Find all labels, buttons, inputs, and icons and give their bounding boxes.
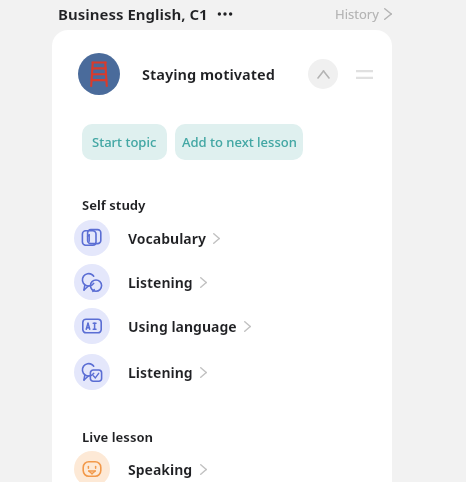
button[interactable]: Reorder — [352, 62, 376, 86]
staticText: History — [335, 5, 379, 23]
button[interactable]: Speaking — [74, 449, 374, 482]
button[interactable]: Using language — [74, 306, 374, 346]
button[interactable]: More options — [214, 4, 236, 24]
button[interactable]: Start topic — [82, 124, 167, 160]
button[interactable]: Listening — [74, 262, 374, 302]
button[interactable]: Collapse — [308, 59, 338, 89]
staticText: Speaking — [128, 460, 193, 479]
staticText: Live lesson — [82, 428, 153, 446]
staticText: Vocabulary — [128, 229, 206, 248]
staticText: Listening — [128, 273, 193, 292]
staticText: Listening — [128, 363, 193, 382]
staticText: Start topic — [92, 133, 157, 151]
button[interactable]: History — [335, 5, 392, 23]
button[interactable]: Vocabulary — [74, 218, 374, 258]
staticText: Self study — [82, 196, 146, 214]
staticText: Using language — [128, 317, 237, 336]
staticText: Business English, C1 — [58, 4, 208, 24]
staticText: Staying motivated — [142, 64, 275, 84]
button[interactable]: Add to next lesson — [175, 124, 303, 160]
button[interactable]: Listening — [74, 352, 374, 392]
staticText: Add to next lesson — [182, 133, 297, 151]
